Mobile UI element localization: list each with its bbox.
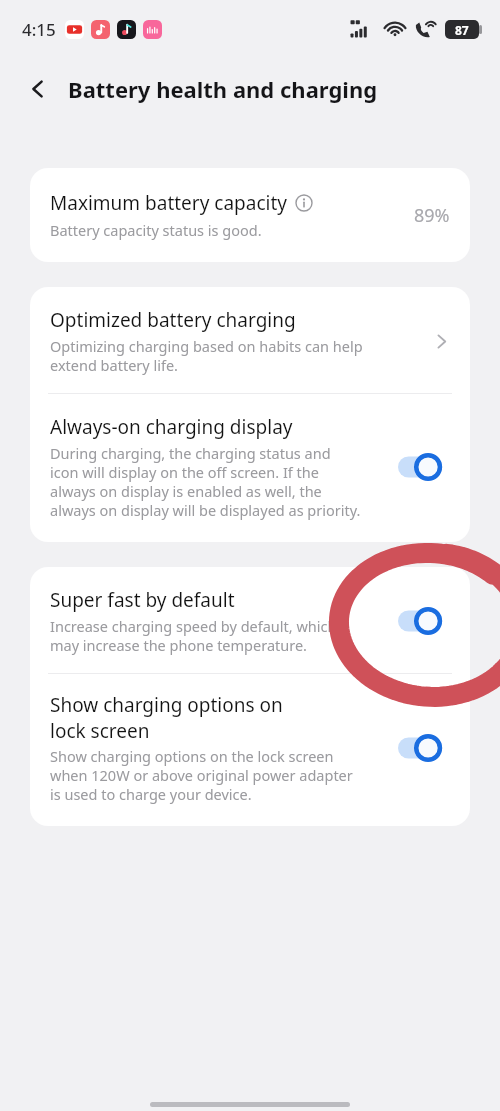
- staticText: Always-on charging display: [50, 414, 293, 440]
- button[interactable]: Toggle Show charging options on lock scr…: [396, 731, 452, 765]
- staticText: 4:15: [22, 18, 56, 41]
- button[interactable]: Super fast by default: [30, 567, 470, 673]
- staticText: Increase charging speed by default, whic…: [50, 616, 337, 655]
- staticText: Show charging options on the lock screen…: [50, 746, 353, 804]
- staticText: 87: [455, 22, 469, 38]
- button[interactable]: Maximum battery capacity: [30, 168, 470, 262]
- button[interactable]: Back: [14, 65, 62, 113]
- staticText: Super fast by default: [50, 587, 235, 613]
- button[interactable]: Optimized battery charging: [30, 287, 470, 393]
- button[interactable]: Toggle Always-on charging display: [396, 450, 452, 484]
- button[interactable]: Always-on charging display: [30, 394, 470, 542]
- staticText: Maximum battery capacity: [50, 190, 288, 216]
- button[interactable]: Toggle Super fast by default: [396, 604, 452, 638]
- staticText: Show charging options on lock screen: [50, 692, 283, 743]
- staticText: Battery health and charging: [68, 74, 378, 104]
- staticText: During charging, the charging status and…: [50, 443, 361, 520]
- staticText: Optimizing charging based on habits can …: [50, 336, 363, 375]
- button[interactable]: Show charging options on lock screen: [30, 674, 470, 826]
- staticText: 89%: [414, 203, 450, 228]
- staticText: Battery capacity status is good.: [50, 220, 262, 240]
- staticText: Optimized battery charging: [50, 307, 296, 333]
